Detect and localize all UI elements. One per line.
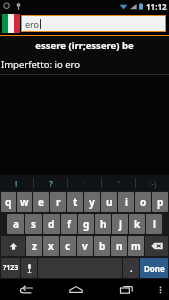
staticText: u: [106, 195, 113, 209]
button[interactable]: h: [95, 214, 111, 234]
button[interactable]: b: [94, 236, 110, 256]
staticText: t: [73, 195, 78, 209]
button[interactable]: Menu: [151, 279, 169, 300]
button[interactable]: .: [123, 258, 139, 278]
button[interactable]: g: [78, 214, 94, 234]
button[interactable]: Home: [51, 279, 101, 300]
button[interactable]: x: [43, 236, 59, 256]
staticText: g: [83, 217, 90, 231]
staticText: essere (irr;essere) be: [0, 39, 169, 52]
staticText: ?: [49, 178, 53, 189]
button[interactable]: e: [33, 192, 49, 212]
button[interactable]: l: [146, 214, 162, 234]
staticText: !: [15, 178, 18, 189]
staticText: w: [20, 195, 29, 209]
staticText: h: [100, 217, 107, 231]
button[interactable]: y: [84, 192, 100, 212]
staticText: q: [5, 195, 12, 209]
staticText: m: [131, 239, 141, 253]
button[interactable]: ero: [21, 15, 166, 32]
button[interactable]: o: [135, 192, 151, 212]
staticText: c: [65, 239, 71, 253]
staticText: ?123: [3, 263, 19, 273]
staticText: Done: [144, 263, 165, 274]
button[interactable]: f: [61, 214, 77, 234]
staticText: b: [99, 239, 106, 253]
button[interactable]: Shift: [1, 236, 25, 256]
button[interactable]: ": [102, 175, 135, 191]
staticText: .: [130, 262, 133, 274]
staticText: y: [89, 195, 95, 209]
staticText: i: [125, 195, 128, 209]
staticText: ero: [25, 18, 40, 30]
button[interactable]: Language: Italian: [1, 13, 21, 34]
staticText: o: [140, 195, 147, 209]
button[interactable]: k: [129, 214, 145, 234]
staticText: 11:12: [146, 1, 167, 12]
button[interactable]: q: [1, 192, 16, 212]
button[interactable]: n: [111, 236, 127, 256]
staticText: l: [153, 217, 156, 231]
button[interactable]: ?123: [1, 258, 20, 278]
button[interactable]: u: [101, 192, 117, 212]
staticText: v: [82, 239, 88, 253]
button[interactable]: i: [118, 192, 134, 212]
staticText: s: [31, 217, 37, 231]
button[interactable]: a: [7, 214, 24, 234]
button[interactable]: Voice input: [21, 258, 37, 278]
button[interactable]: w: [17, 192, 32, 212]
staticText: a: [13, 217, 19, 231]
staticText: p: [157, 195, 164, 209]
button[interactable]: v: [77, 236, 93, 256]
staticText: k: [134, 217, 141, 231]
button[interactable]: j: [112, 214, 128, 234]
button[interactable]: c: [60, 236, 76, 256]
staticText: f: [67, 217, 71, 231]
staticText: j: [119, 217, 122, 231]
staticText: e: [38, 195, 44, 209]
staticText: n: [116, 239, 123, 253]
staticText: ': [83, 178, 86, 189]
button[interactable]: ?: [34, 175, 67, 191]
button[interactable]: d: [43, 214, 60, 234]
button[interactable]: t: [67, 192, 83, 212]
staticText: r: [56, 195, 61, 209]
button[interactable]: Recent apps: [101, 279, 151, 300]
button[interactable]: r: [50, 192, 66, 212]
button[interactable]: Back: [0, 279, 51, 300]
staticText: x: [48, 239, 54, 253]
staticText: z: [32, 239, 37, 253]
button[interactable]: Backspace: [145, 236, 168, 256]
staticText: d: [48, 217, 55, 231]
staticText: :-): [149, 178, 157, 189]
staticText: ": [117, 178, 121, 189]
button[interactable]: Done: [140, 258, 168, 278]
button[interactable]: z: [26, 236, 42, 256]
button[interactable]: p: [152, 192, 168, 212]
button[interactable]: s: [25, 214, 42, 234]
button[interactable]: !: [0, 175, 33, 191]
button[interactable]: m: [128, 236, 144, 256]
button[interactable]: :-): [136, 175, 169, 191]
staticText: Imperfetto: io ero: [1, 58, 169, 71]
